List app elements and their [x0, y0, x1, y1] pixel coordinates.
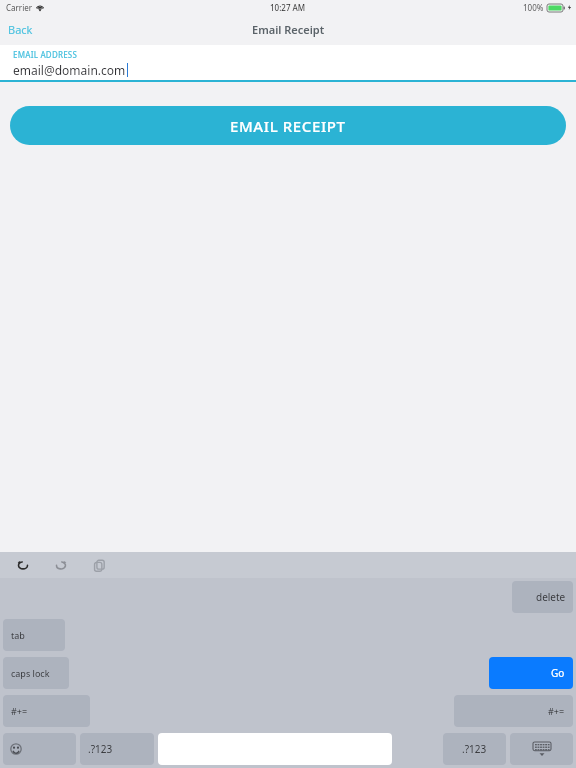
button[interactable]: .?123 [443, 733, 506, 765]
staticText: delete [536, 590, 566, 604]
staticText: 10:27 AM [270, 2, 306, 13]
staticText: #+= [548, 705, 565, 717]
button[interactable]: delete [512, 581, 573, 613]
staticText: Go [551, 666, 565, 680]
button[interactable]: Redo [48, 552, 74, 578]
button[interactable]: EMAIL ADDRESS [0, 45, 576, 82]
staticText: Back [8, 22, 33, 37]
button[interactable]: tab [3, 619, 65, 651]
staticText: .?123 [88, 742, 113, 756]
staticText: tab [11, 629, 25, 641]
button[interactable]: Back [0, 18, 41, 41]
button[interactable]: Emoji [3, 733, 76, 765]
button[interactable]: #+= [454, 695, 573, 727]
staticText: email@domain.com [13, 62, 126, 78]
button[interactable]: Paste [86, 552, 112, 578]
staticText: .?123 [462, 742, 487, 756]
button[interactable]: Undo [10, 552, 36, 578]
button[interactable]: EMAIL RECEIPT [10, 106, 566, 145]
staticText: Email Receipt [252, 22, 325, 37]
staticText: EMAIL RECEIPT [230, 116, 346, 136]
staticText: EMAIL ADDRESS [13, 49, 78, 60]
button[interactable]: caps lock [3, 657, 69, 689]
button[interactable]: .?123 [80, 733, 154, 765]
button[interactable]: Hide keyboard [510, 733, 573, 765]
button[interactable]: Go [489, 657, 573, 689]
staticText: #+= [11, 705, 28, 717]
staticText: caps lock [11, 667, 50, 679]
button[interactable]: #+= [3, 695, 90, 727]
staticText: Carrier [6, 2, 33, 13]
staticText: 100% [523, 2, 544, 13]
